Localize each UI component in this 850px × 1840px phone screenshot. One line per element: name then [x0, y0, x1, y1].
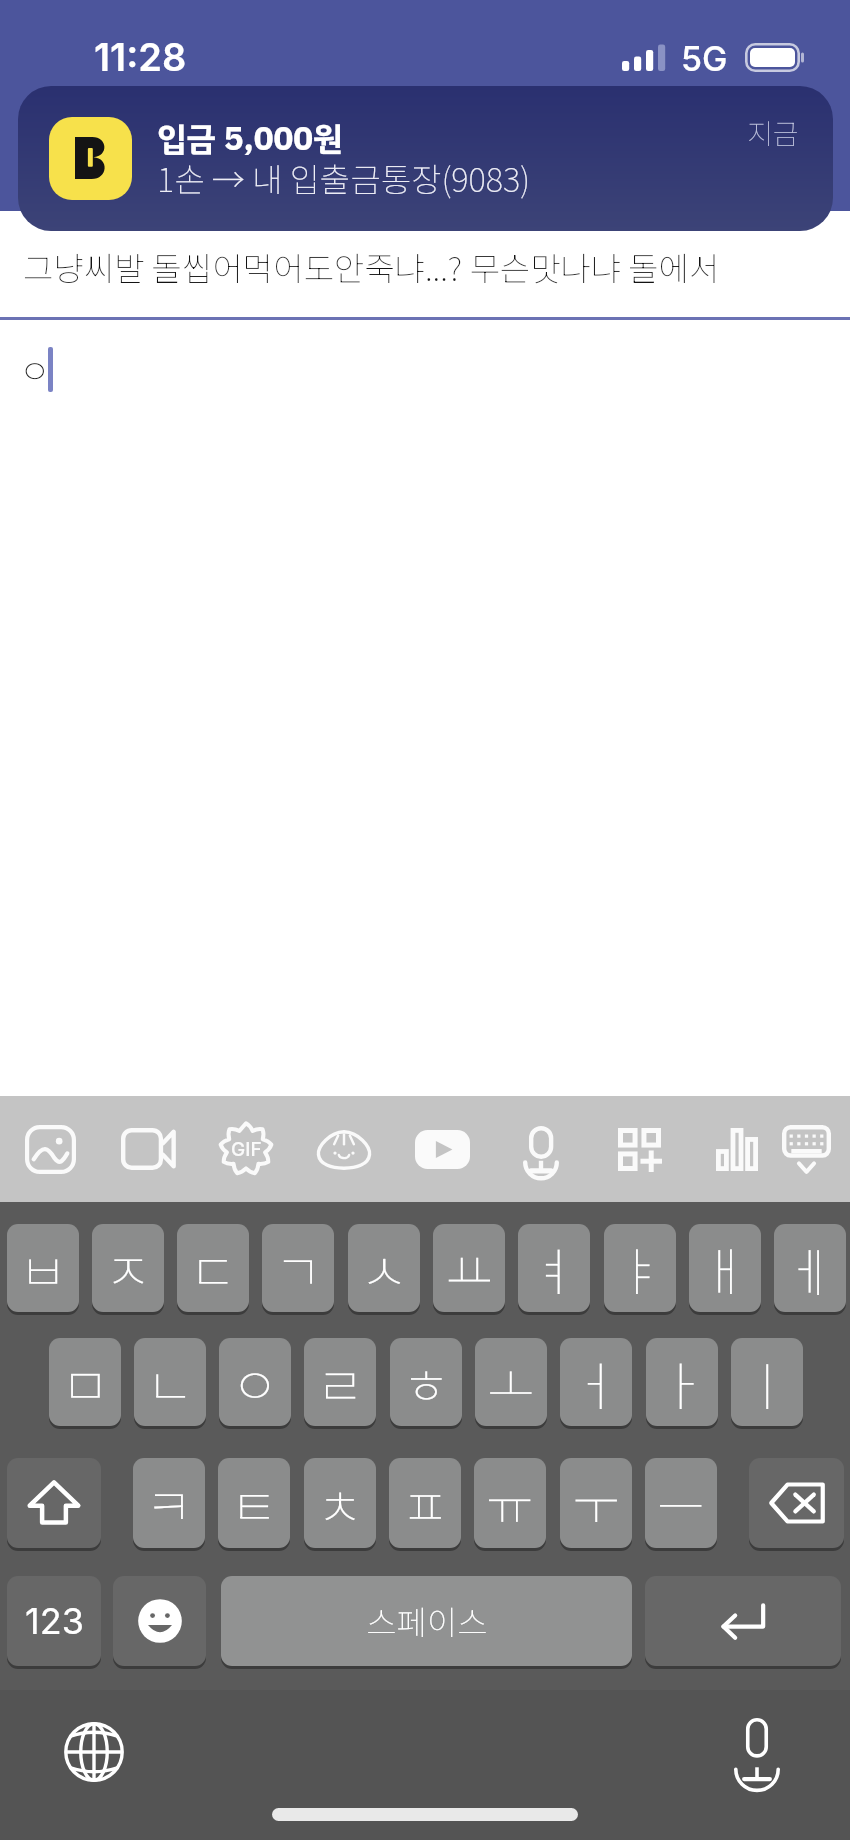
button[interactable]: 스페이스	[221, 1576, 632, 1666]
button[interactable]: Return	[645, 1576, 841, 1666]
button[interactable]: ㄴ	[134, 1338, 206, 1426]
button[interactable]: 입금 5,000원	[18, 86, 833, 231]
staticText: ㅜ	[572, 1466, 620, 1541]
button[interactable]: ㅇ	[219, 1338, 291, 1426]
button[interactable]: ㅁ	[49, 1338, 121, 1426]
staticText: ㅋ	[145, 1466, 193, 1541]
staticText: ㅇ	[231, 1345, 279, 1420]
button[interactable]: ㅓ	[560, 1338, 632, 1426]
button[interactable]: ㅂ	[7, 1224, 79, 1312]
button[interactable]: YouTube	[409, 1116, 475, 1182]
button[interactable]: ㅈ	[92, 1224, 164, 1312]
button[interactable]: ㅅ	[348, 1224, 420, 1312]
staticText: ㅎ	[402, 1345, 450, 1420]
staticText: ㅛ	[445, 1231, 493, 1306]
staticText: ㅅ	[360, 1231, 408, 1306]
button[interactable]: Change keyboard language	[64, 1722, 124, 1782]
button[interactable]: 123	[7, 1576, 101, 1666]
button[interactable]: ㅠ	[474, 1458, 546, 1548]
button[interactable]: Backspace	[749, 1458, 844, 1548]
button[interactable]: ㅏ	[646, 1338, 718, 1426]
staticText: ㄴ	[146, 1345, 194, 1420]
button[interactable]: Apps	[606, 1116, 672, 1182]
button[interactable]: Shift	[7, 1458, 101, 1548]
button[interactable]: GIF	[213, 1116, 279, 1182]
button[interactable]: ㅜ	[560, 1458, 632, 1548]
staticText: ㅏ	[658, 1345, 706, 1420]
staticText: 123	[25, 1599, 84, 1643]
button[interactable]: ㅑ	[604, 1224, 676, 1312]
staticText: ㄷ	[189, 1231, 237, 1306]
staticText: ㅇ	[19, 345, 51, 394]
button[interactable]: ㅎ	[390, 1338, 462, 1426]
staticText: ㅑ	[616, 1231, 664, 1306]
button[interactable]: Hide keyboard	[773, 1116, 839, 1182]
staticText: 스페이스	[366, 1597, 488, 1645]
staticText: ㅌ	[230, 1466, 278, 1541]
button[interactable]: Video	[115, 1116, 181, 1182]
staticText: ㅓ	[572, 1345, 620, 1420]
staticText: ㅊ	[316, 1466, 364, 1541]
staticText: 입금 5,000원	[157, 114, 343, 164]
staticText: 5G	[681, 38, 728, 79]
button[interactable]: Emoji	[113, 1576, 206, 1666]
button[interactable]: ㄷ	[177, 1224, 249, 1312]
staticText: ㄹ	[316, 1345, 364, 1420]
staticText: ㅣ	[743, 1345, 791, 1420]
staticText: GIF	[231, 1138, 262, 1161]
staticText: ㅔ	[786, 1231, 834, 1306]
staticText: ㅠ	[486, 1466, 534, 1541]
button[interactable]: ㄹ	[304, 1338, 376, 1426]
button[interactable]: Voice	[508, 1116, 574, 1182]
staticText: ㅂ	[19, 1231, 67, 1306]
button[interactable]: ㅛ	[433, 1224, 505, 1312]
staticText: ㅍ	[401, 1466, 449, 1541]
staticText: ㄱ	[274, 1231, 322, 1306]
button[interactable]: ㅋ	[133, 1458, 205, 1548]
staticText: ㅁ	[61, 1345, 109, 1420]
button[interactable]: ㅊ	[304, 1458, 376, 1548]
staticText: 지금	[747, 112, 799, 153]
button[interactable]: ㄱ	[262, 1224, 334, 1312]
button[interactable]: ㅗ	[475, 1338, 547, 1426]
button[interactable]: ㅌ	[218, 1458, 290, 1548]
button[interactable]: Dictation	[734, 1718, 780, 1782]
button[interactable]: ㅡ	[645, 1458, 717, 1548]
button[interactable]: ㅕ	[518, 1224, 590, 1312]
button[interactable]: ㅔ	[774, 1224, 846, 1312]
button[interactable]: Photos	[17, 1116, 83, 1182]
staticText: ㅗ	[487, 1345, 535, 1420]
staticText: ㅕ	[530, 1231, 578, 1306]
button[interactable]: ㅐ	[689, 1224, 761, 1312]
staticText: ㅈ	[104, 1231, 152, 1306]
staticText: 1손 → 내 입출금통장(9083)	[157, 154, 530, 202]
staticText: ㅐ	[701, 1231, 749, 1306]
button[interactable]: Poll	[704, 1116, 770, 1182]
staticText: 그냥씨발 돌씹어먹어도안죽냐...? 무슨맛나냐 돌에서	[23, 243, 720, 291]
button[interactable]: Sticker	[311, 1116, 377, 1182]
staticText: 11:28	[94, 34, 187, 80]
button[interactable]: ㅍ	[389, 1458, 461, 1548]
button[interactable]: ㅣ	[731, 1338, 803, 1426]
staticText: ㅡ	[657, 1466, 705, 1541]
